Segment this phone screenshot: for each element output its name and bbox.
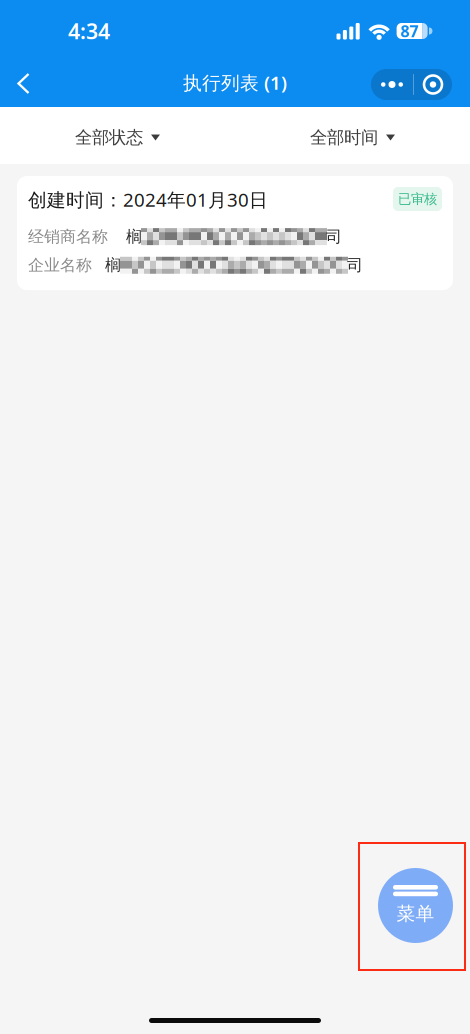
staticText: 司: [347, 255, 363, 275]
staticText: 全部时间: [310, 127, 378, 148]
staticText: 执行列表 (1): [183, 70, 287, 95]
button[interactable]: 全部状态: [0, 107, 235, 164]
staticText: 榈: [126, 227, 142, 246]
button[interactable]: Back: [0, 58, 47, 107]
staticText: 87: [401, 20, 419, 42]
button[interactable]: 全部时间: [235, 107, 470, 164]
button[interactable]: More options: [371, 69, 452, 100]
staticText: 企业名称: [28, 255, 92, 275]
button[interactable]: 创建时间：2024年01月30日: [17, 176, 453, 290]
staticText: 榈: [105, 255, 121, 275]
button[interactable]: 菜单: [378, 868, 453, 943]
staticText: 4:34: [68, 17, 110, 45]
staticText: 司: [326, 227, 342, 246]
staticText: 创建时间：2024年01月30日: [28, 187, 268, 212]
staticText: 菜单: [396, 902, 434, 925]
staticText: 全部状态: [75, 127, 143, 148]
staticText: 已审核: [398, 191, 437, 207]
staticText: 经销商名称: [28, 227, 108, 246]
